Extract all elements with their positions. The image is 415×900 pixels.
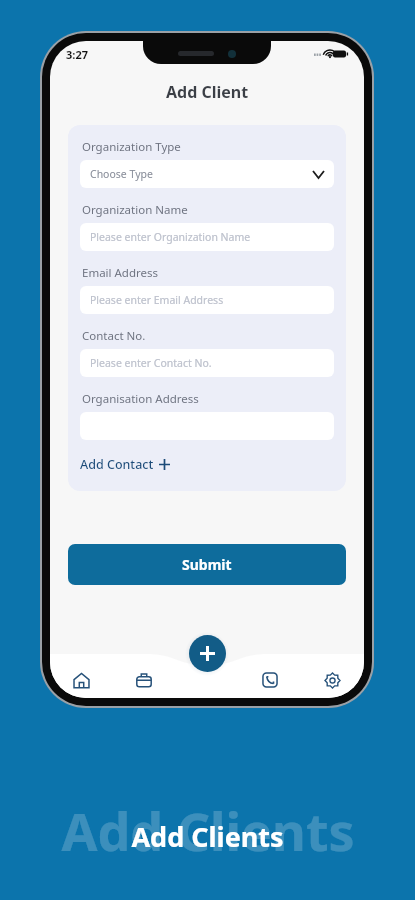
staticText: Please enter Email Address: [90, 293, 224, 307]
staticText: Organization Name: [82, 202, 188, 218]
staticText: Add Contact: [80, 456, 154, 473]
button[interactable]: Please enter Email Address: [80, 286, 334, 314]
button[interactable]: Please enter Contact No.: [80, 349, 334, 377]
button[interactable]: Please enter Organization Name: [80, 223, 334, 251]
button[interactable]: Submit: [68, 544, 346, 585]
staticText: Email Address: [82, 265, 159, 281]
staticText: Organisation Address: [82, 391, 199, 407]
staticText: Add Clients: [61, 795, 355, 866]
button[interactable]: Home: [50, 662, 112, 698]
staticText: Contact No.: [82, 328, 146, 344]
button[interactable]: Briefcase: [112, 662, 175, 698]
button[interactable]: Calls: [238, 662, 301, 698]
button[interactable]: Add Contact: [80, 454, 174, 475]
button[interactable]: Settings: [301, 662, 364, 698]
staticText: 3:27: [66, 47, 88, 62]
staticText: Organization Type: [82, 139, 181, 155]
staticText: Please enter Organization Name: [90, 230, 251, 244]
staticText: Choose Type: [90, 167, 153, 181]
staticText: Submit: [182, 555, 232, 574]
button[interactable]: Add: [189, 635, 226, 672]
staticText: Add Client: [166, 81, 249, 103]
staticText: Add Clients: [131, 818, 284, 855]
staticText: Please enter Contact No.: [90, 356, 212, 370]
button[interactable]: Choose Type: [80, 160, 334, 188]
